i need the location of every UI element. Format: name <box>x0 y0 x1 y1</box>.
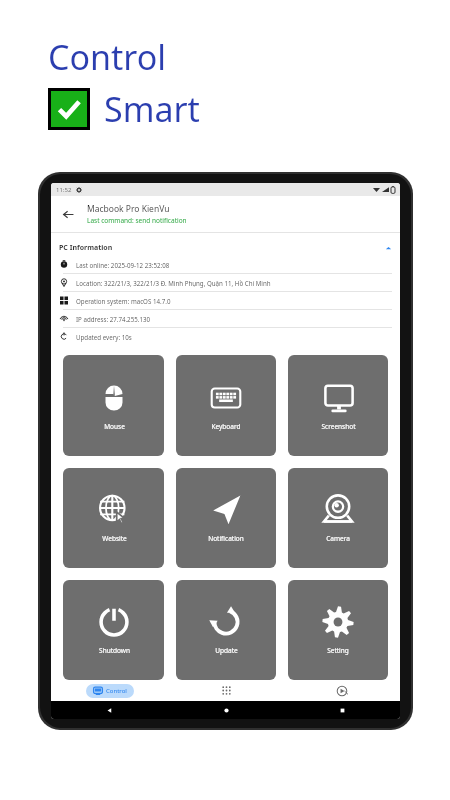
staticText: Smart <box>104 86 200 132</box>
button[interactable]: Notification <box>176 468 276 568</box>
staticText: Operation system: macOS 14.7.0 <box>76 297 171 305</box>
staticText: 11:52 <box>56 186 72 194</box>
button[interactable]: Updated every: 10s <box>59 328 392 345</box>
staticText: Control <box>48 34 167 80</box>
staticText: Control <box>106 687 127 695</box>
button[interactable]: Shutdown <box>63 580 164 680</box>
staticText: Keyboard <box>211 422 241 431</box>
staticText: Shutdown <box>99 646 130 655</box>
button[interactable]: IP address: 27.74.255.130 <box>59 310 392 327</box>
staticText: Updated every: 10s <box>76 333 132 341</box>
button[interactable]: Keyboard <box>176 355 276 456</box>
button[interactable]: Screenshot <box>288 355 388 456</box>
staticText: Screenshot <box>321 422 356 431</box>
staticText: Macbook Pro KienVu <box>87 203 170 215</box>
button[interactable]: Back <box>51 701 168 719</box>
button[interactable]: Website <box>63 468 164 568</box>
staticText: Notification <box>208 534 244 543</box>
staticText: IP address: 27.74.255.130 <box>76 315 151 323</box>
button[interactable]: Location: 322/21/3, 322/21/3 Đ. Minh Phụ… <box>59 274 392 291</box>
staticText: Setting <box>327 646 349 655</box>
button[interactable]: Apps <box>168 680 284 701</box>
staticText: Last command: send notification <box>87 216 187 225</box>
button[interactable]: Automation <box>284 680 400 701</box>
button[interactable]: Update <box>176 580 276 680</box>
button[interactable]: Back <box>57 203 79 225</box>
button[interactable]: PC Information <box>59 240 392 256</box>
button[interactable]: Last online: 2025-09-12 23:52:08 <box>59 256 392 273</box>
staticText: Mouse <box>104 422 125 431</box>
button[interactable]: Control <box>86 684 134 698</box>
staticText: Camera <box>326 534 350 543</box>
staticText: Website <box>102 534 127 543</box>
staticText: PC Information <box>59 243 113 253</box>
button[interactable]: Mouse <box>63 355 164 456</box>
button[interactable]: Camera <box>288 468 388 568</box>
staticText: Location: 322/21/3, 322/21/3 Đ. Minh Phụ… <box>76 279 271 287</box>
button[interactable]: Home <box>168 701 284 719</box>
staticText: Update <box>215 646 238 655</box>
staticText: Last online: 2025-09-12 23:52:08 <box>76 261 170 269</box>
button[interactable]: Operation system: macOS 14.7.0 <box>59 292 392 309</box>
button[interactable]: Recent apps <box>284 701 400 719</box>
button[interactable]: Setting <box>288 580 388 680</box>
